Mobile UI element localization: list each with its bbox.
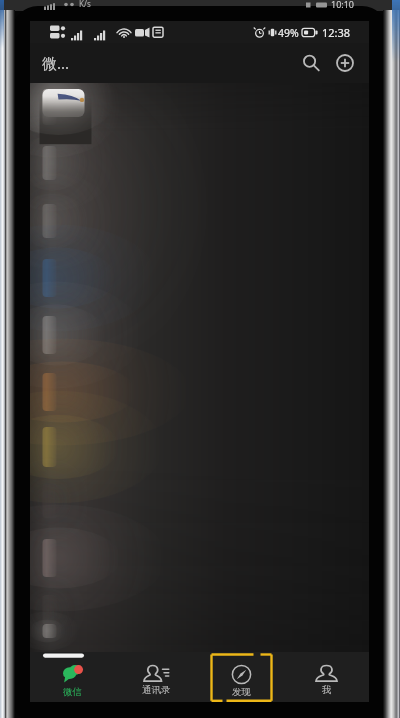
button[interactable]: 微信 [30, 652, 114, 702]
button[interactable]: 通讯录 [114, 652, 199, 702]
staticText: 通讯录 [142, 684, 171, 696]
button[interactable]: 发现 [199, 652, 284, 702]
staticText: 10:10 [331, 0, 355, 10]
staticText: 微信 [63, 686, 82, 698]
button[interactable]: Add [329, 47, 361, 79]
staticText: K/s [79, 0, 91, 9]
staticText: 我 [322, 684, 332, 696]
staticText: 49% [278, 26, 299, 40]
staticText: 微... [42, 53, 70, 73]
button[interactable]: 我 [284, 652, 369, 702]
button[interactable]: Search [295, 47, 327, 79]
staticText: 发现 [232, 686, 251, 698]
staticText: 12:38 [322, 25, 351, 40]
